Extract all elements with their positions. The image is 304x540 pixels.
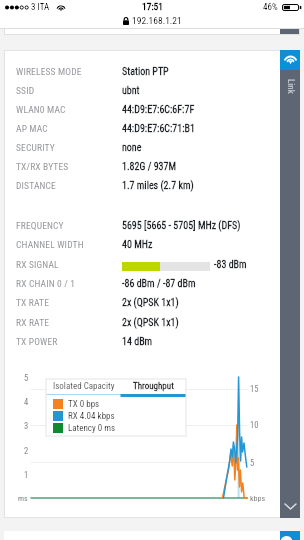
staticText: SECURITY [16, 142, 55, 153]
staticText: 5 [24, 373, 29, 383]
staticText: WIRELESS MODE [16, 66, 82, 77]
button[interactable]: Isolated Capacity [46, 379, 121, 394]
staticText: 1.7 miles (2.7 km) [122, 180, 194, 192]
button[interactable]: Link status [280, 50, 300, 70]
button[interactable]: DISTANCE [4, 176, 300, 195]
staticText: AP MAC [16, 123, 48, 134]
staticText: 46% [263, 2, 278, 13]
staticText: -83 dBm [214, 259, 247, 271]
staticText: -86 dBm / -87 dBm [122, 278, 196, 290]
staticText: RX SIGNAL [16, 259, 59, 270]
staticText: 3 [24, 421, 29, 431]
staticText: ms [18, 494, 28, 503]
staticText: TX POWER [16, 336, 58, 347]
button[interactable]: RX CHAIN 0 / 1 [4, 274, 300, 293]
staticText: TX RATE [16, 297, 50, 308]
staticText: RX 4.04 kbps [68, 411, 115, 422]
button[interactable]: Throughput [121, 379, 186, 394]
staticText: 1.82G / 937M [122, 161, 177, 173]
button[interactable]: RX RATE [4, 313, 300, 332]
staticText: 2x (QPSK 1x1) [122, 297, 179, 309]
button[interactable]: WLAN0 MAC [4, 100, 300, 119]
button[interactable]: TX/RX BYTES [4, 157, 300, 176]
staticText: ubnt [122, 85, 140, 97]
staticText: 10 [250, 420, 259, 430]
staticText: 15 [250, 384, 259, 394]
staticText: 3 ITA [31, 2, 50, 13]
staticText: 192.168.1.21 [132, 15, 182, 26]
staticText: 5 [250, 458, 255, 468]
button[interactable]: TX RATE [4, 293, 300, 312]
staticText: kbps [250, 494, 266, 503]
staticText: Link [285, 79, 296, 94]
staticText: 2x (QPSK 1x1) [122, 317, 179, 329]
button[interactable]: TX POWER [4, 332, 300, 351]
button[interactable]: AP MAC [4, 119, 300, 138]
button[interactable]: SSID [4, 81, 300, 100]
staticText: 2 [24, 446, 29, 456]
staticText: 14 dBm [122, 336, 153, 348]
staticText: SSID [16, 85, 35, 96]
staticText: 17:51 [142, 1, 163, 12]
button[interactable]: FREQUENCY [4, 216, 300, 235]
staticText: Latency 0 ms [68, 423, 116, 434]
staticText: none [122, 142, 142, 154]
button[interactable]: SECURITY [4, 138, 300, 157]
button[interactable]: CHANNEL WIDTH [4, 235, 300, 254]
staticText: RX RATE [16, 317, 50, 328]
staticText: Station PTP [122, 66, 169, 78]
button[interactable]: WIRELESS MODE [4, 62, 300, 81]
staticText: 40 MHz [122, 239, 153, 251]
staticText: RX CHAIN 0 / 1 [16, 278, 76, 289]
staticText: DISTANCE [16, 180, 56, 191]
staticText: FREQUENCY [16, 220, 64, 231]
staticText: WLAN0 MAC [16, 104, 66, 115]
staticText: 5695 [5665 - 5705] MHz (DFS) [122, 220, 241, 232]
staticText: Isolated Capacity [53, 381, 115, 392]
staticText: 4 [24, 397, 29, 407]
staticText: TX 0 bps [68, 399, 100, 410]
staticText: 44:D9:E7:6C:71:B1 [122, 123, 195, 135]
button[interactable]: RX SIGNAL [4, 255, 300, 274]
staticText: 1 [24, 470, 29, 480]
staticText: TX/RX BYTES [16, 161, 69, 172]
staticText: 44:D9:E7:6C:6F:7F [122, 104, 195, 116]
staticText: CHANNEL WIDTH [16, 239, 84, 250]
staticText: Throughput [133, 381, 174, 392]
